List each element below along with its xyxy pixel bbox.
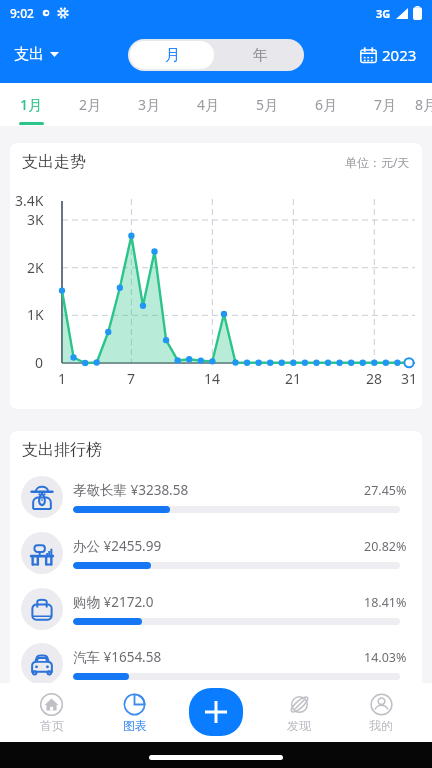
staticText: 3G — [376, 6, 391, 21]
button[interactable]: 汽车 ¥1654.58 — [10, 637, 422, 691]
staticText: 我的 — [369, 718, 393, 733]
staticText: 3K — [27, 210, 44, 229]
button[interactable]: 5月 — [238, 83, 297, 126]
staticText: 支出排行榜 — [22, 440, 102, 460]
staticText: 14.03% — [364, 649, 407, 666]
staticText: 支出 — [14, 45, 44, 64]
staticText: 31 — [401, 369, 418, 388]
staticText: 28 — [366, 369, 383, 388]
staticText: 0 — [35, 353, 44, 372]
button[interactable]: 月 — [130, 41, 214, 69]
button[interactable]: 发现 — [258, 683, 340, 742]
button[interactable]: 支出 — [12, 37, 61, 72]
staticText: 2023 — [382, 45, 417, 65]
staticText: 1K — [27, 305, 44, 324]
staticText: 7 — [127, 369, 136, 388]
staticText: 支出走势 — [22, 152, 86, 172]
staticText: 3月 — [138, 95, 161, 114]
staticText: 1 — [58, 369, 67, 388]
staticText: 办公 ¥2455.99 — [73, 537, 162, 555]
staticText: 2月 — [79, 95, 102, 114]
button[interactable]: 6月 — [297, 83, 356, 126]
staticText: 21 — [285, 369, 302, 388]
button[interactable]: 7月 — [356, 83, 415, 126]
staticText: 单位：元/天 — [345, 154, 410, 170]
button[interactable]: 8月 — [415, 83, 432, 126]
staticText: 首页 — [40, 718, 64, 733]
staticText: 汽车 ¥1654.58 — [73, 648, 162, 666]
staticText: 4月 — [197, 95, 220, 114]
button[interactable]: 3月 — [120, 83, 179, 126]
button[interactable]: 首页 — [10, 683, 93, 742]
button[interactable]: 1月 — [2, 83, 61, 126]
button[interactable]: Select year — [358, 37, 419, 73]
staticText: 图表 — [123, 718, 147, 733]
button[interactable]: 2月 — [61, 83, 120, 126]
staticText: 2K — [27, 258, 44, 277]
staticText: 27.45% — [364, 482, 407, 499]
staticText: 孝敬长辈 ¥3238.58 — [73, 481, 189, 499]
staticText: 1月 — [20, 95, 43, 114]
staticText: 9:02 — [10, 5, 34, 21]
staticText: 7月 — [374, 95, 397, 114]
staticText: 3.4K — [15, 191, 44, 210]
button[interactable]: 4月 — [179, 83, 238, 126]
button[interactable]: 年 — [216, 39, 304, 71]
staticText: 月 — [165, 46, 180, 65]
staticText: 年 — [253, 46, 268, 65]
staticText: 发现 — [287, 718, 311, 733]
button[interactable]: 图表 — [93, 683, 176, 742]
staticText: 14 — [204, 369, 221, 388]
button[interactable]: Add record — [189, 688, 243, 736]
staticText: 18.41% — [364, 594, 407, 611]
button[interactable]: 购物 ¥2172.0 — [10, 581, 422, 637]
button[interactable]: 我的 — [340, 683, 422, 742]
staticText: 6月 — [315, 95, 338, 114]
staticText: 20.82% — [364, 538, 407, 555]
staticText: 8月 — [415, 95, 432, 114]
staticText: 5月 — [256, 95, 279, 114]
staticText: 购物 ¥2172.0 — [73, 593, 154, 611]
other: Select year — [360, 47, 377, 64]
button[interactable]: 孝敬长辈 ¥3238.58 — [10, 469, 422, 525]
button[interactable]: 办公 ¥2455.99 — [10, 525, 422, 581]
